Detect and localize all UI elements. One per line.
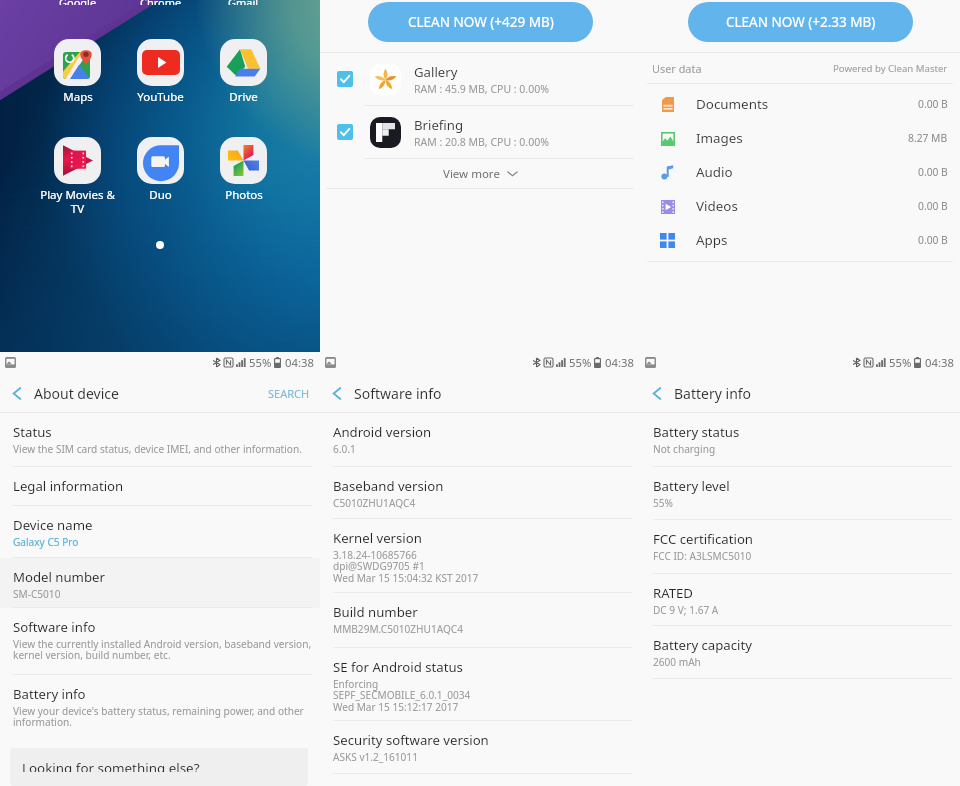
- staticText: Enforcing SEPF_SECMOBILE_6.0.1_0034 Wed …: [333, 677, 471, 714]
- staticText: Battery status: [653, 423, 740, 441]
- staticText: FCC ID: A3LSMC5010: [653, 549, 752, 563]
- staticText: Videos: [696, 197, 738, 215]
- button[interactable]: Legal information: [0, 467, 320, 506]
- staticText: 3.18.24-10685766 dpi@SWDG9705 #1 Wed Mar…: [333, 548, 479, 585]
- staticText: Battery level: [653, 477, 730, 495]
- staticText: Battery info: [674, 384, 752, 403]
- button[interactable]: Audio: [640, 155, 960, 189]
- staticText: SE for Android status: [333, 658, 463, 676]
- button[interactable]: SE for Android status: [320, 648, 640, 721]
- staticText: Build number: [333, 603, 418, 621]
- button[interactable]: Duo: [119, 137, 202, 203]
- staticText: Google: [59, 0, 97, 5]
- button[interactable]: Videos: [640, 189, 960, 223]
- staticText: 8.27 MB: [908, 131, 948, 145]
- staticText: Looking for something else?: [22, 759, 200, 772]
- staticText: 2600 mAh: [653, 655, 701, 669]
- staticText: Audio: [696, 163, 733, 181]
- staticText: Documents: [696, 95, 769, 113]
- staticText: 55%: [249, 355, 272, 370]
- button[interactable]: Security software version: [320, 721, 640, 774]
- button[interactable]: YouTube: [119, 39, 202, 105]
- staticText: Duo: [149, 187, 172, 203]
- staticText: Legal information: [13, 477, 124, 495]
- staticText: Maps: [63, 89, 93, 105]
- staticText: 04:38: [285, 355, 314, 370]
- staticText: FCC certification: [653, 530, 754, 548]
- button[interactable]: Battery info: [0, 675, 320, 748]
- staticText: Gmail: [228, 0, 259, 5]
- staticText: Software info: [13, 618, 96, 636]
- staticText: SM-C5010: [13, 587, 61, 601]
- staticText: Not charging: [653, 442, 716, 456]
- staticText: Images: [696, 129, 743, 147]
- button[interactable]: Looking for something else?: [10, 748, 308, 786]
- staticText: Photos: [225, 187, 263, 203]
- button[interactable]: Photos: [202, 137, 285, 203]
- button[interactable]: SEARCH: [258, 378, 320, 409]
- button[interactable]: Drive: [202, 39, 285, 105]
- staticText: 0.00 B: [918, 199, 948, 213]
- staticText: Android version: [333, 423, 432, 441]
- staticText: View more: [443, 166, 500, 182]
- staticText: 04:38: [925, 355, 954, 370]
- staticText: Briefing: [414, 116, 464, 134]
- staticText: Play Movies & TV: [40, 187, 115, 216]
- button[interactable]: Back: [640, 376, 674, 410]
- staticText: Device name: [13, 516, 93, 534]
- button[interactable]: RATED: [640, 574, 960, 626]
- staticText: Kernel version: [333, 529, 422, 547]
- staticText: DC 9 V; 1.67 A: [653, 603, 719, 617]
- staticText: 04:38: [605, 355, 634, 370]
- button[interactable]: Documents: [640, 87, 960, 121]
- staticText: View your device's battery status, remai…: [13, 704, 304, 729]
- button[interactable]: Back: [0, 376, 34, 410]
- staticText: View the currently installed Android ver…: [13, 637, 312, 662]
- button[interactable]: CLEAN NOW (+2.33 MB): [688, 2, 913, 42]
- staticText: Chrome: [140, 0, 182, 5]
- staticText: MMB29M.C5010ZHU1AQC4: [333, 622, 463, 636]
- staticText: 0.00 B: [918, 233, 948, 247]
- staticText: C5010ZHU1AQC4: [333, 496, 416, 510]
- button[interactable]: Play Movies & TV: [36, 137, 119, 216]
- button[interactable]: Baseband version: [320, 467, 640, 519]
- button[interactable]: Build number: [320, 593, 640, 648]
- button[interactable]: Battery status: [640, 413, 960, 467]
- staticText: Powered by Clean Master: [833, 62, 948, 75]
- button[interactable]: Battery level: [640, 467, 960, 520]
- button[interactable]: View more: [320, 159, 640, 188]
- button[interactable]: Device name: [0, 506, 320, 558]
- staticText: Software info: [354, 384, 442, 403]
- button[interactable]: Back: [320, 376, 354, 410]
- staticText: 0.00 B: [918, 165, 948, 179]
- staticText: YouTube: [137, 89, 184, 105]
- staticText: Model number: [13, 568, 105, 586]
- staticText: 0.00 B: [918, 97, 948, 111]
- staticText: 55%: [569, 355, 592, 370]
- staticText: RAM : 45.9 MB, CPU : 0.00%: [414, 82, 549, 96]
- button[interactable]: CLEAN NOW (+429 MB): [368, 2, 593, 42]
- button[interactable]: Status: [0, 413, 320, 467]
- button[interactable]: Kernel version: [320, 519, 640, 593]
- staticText: 55%: [889, 355, 912, 370]
- staticText: 6.0.1: [333, 442, 356, 456]
- button[interactable]: Model number: [0, 558, 320, 608]
- staticText: SEARCH: [268, 386, 310, 401]
- button[interactable]: Briefing: [320, 106, 640, 158]
- staticText: Battery capacity: [653, 636, 752, 654]
- staticText: User data: [652, 61, 702, 76]
- staticText: RAM : 20.8 MB, CPU : 0.00%: [414, 135, 549, 149]
- button[interactable]: FCC certification: [640, 520, 960, 574]
- button[interactable]: Gallery: [320, 53, 640, 105]
- button[interactable]: Android version: [320, 413, 640, 467]
- button[interactable]: Apps: [640, 223, 960, 257]
- staticText: Galaxy C5 Pro: [13, 535, 79, 549]
- staticText: Battery info: [13, 685, 86, 703]
- button[interactable]: Images: [640, 121, 960, 155]
- staticText: CLEAN NOW (+2.33 MB): [726, 13, 876, 31]
- button[interactable]: Software info: [0, 608, 320, 675]
- button[interactable]: Maps: [36, 39, 119, 105]
- staticText: CLEAN NOW (+429 MB): [408, 13, 554, 31]
- button[interactable]: Battery capacity: [640, 626, 960, 679]
- staticText: Drive: [229, 89, 258, 105]
